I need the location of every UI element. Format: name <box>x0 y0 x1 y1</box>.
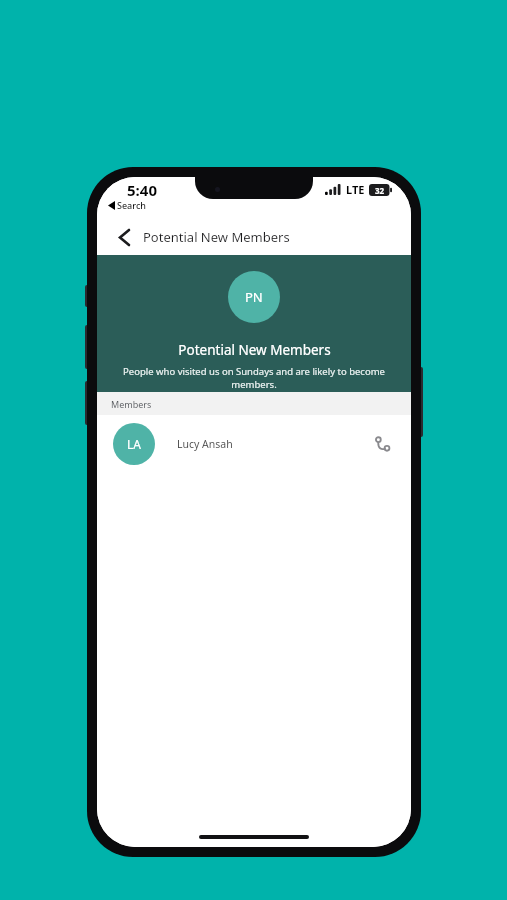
staticText: Search <box>117 199 146 211</box>
staticText: 32 <box>375 185 385 196</box>
staticText: PN <box>245 288 263 306</box>
staticText: LA <box>127 436 141 452</box>
button[interactable]: Call <box>369 430 397 458</box>
staticText: LTE <box>346 182 365 197</box>
staticText: People who visited us on Sundays and are… <box>115 365 393 391</box>
staticText: Lucy Ansah <box>177 437 369 451</box>
staticText: Potential New Members <box>178 341 331 359</box>
staticText: Potential New Members <box>143 228 290 246</box>
staticText: Members <box>111 398 152 410</box>
staticText: 5:40 <box>127 180 157 200</box>
button[interactable]: Back <box>111 224 137 250</box>
button[interactable]: LA <box>97 415 411 473</box>
button[interactable]: PN <box>228 271 280 323</box>
